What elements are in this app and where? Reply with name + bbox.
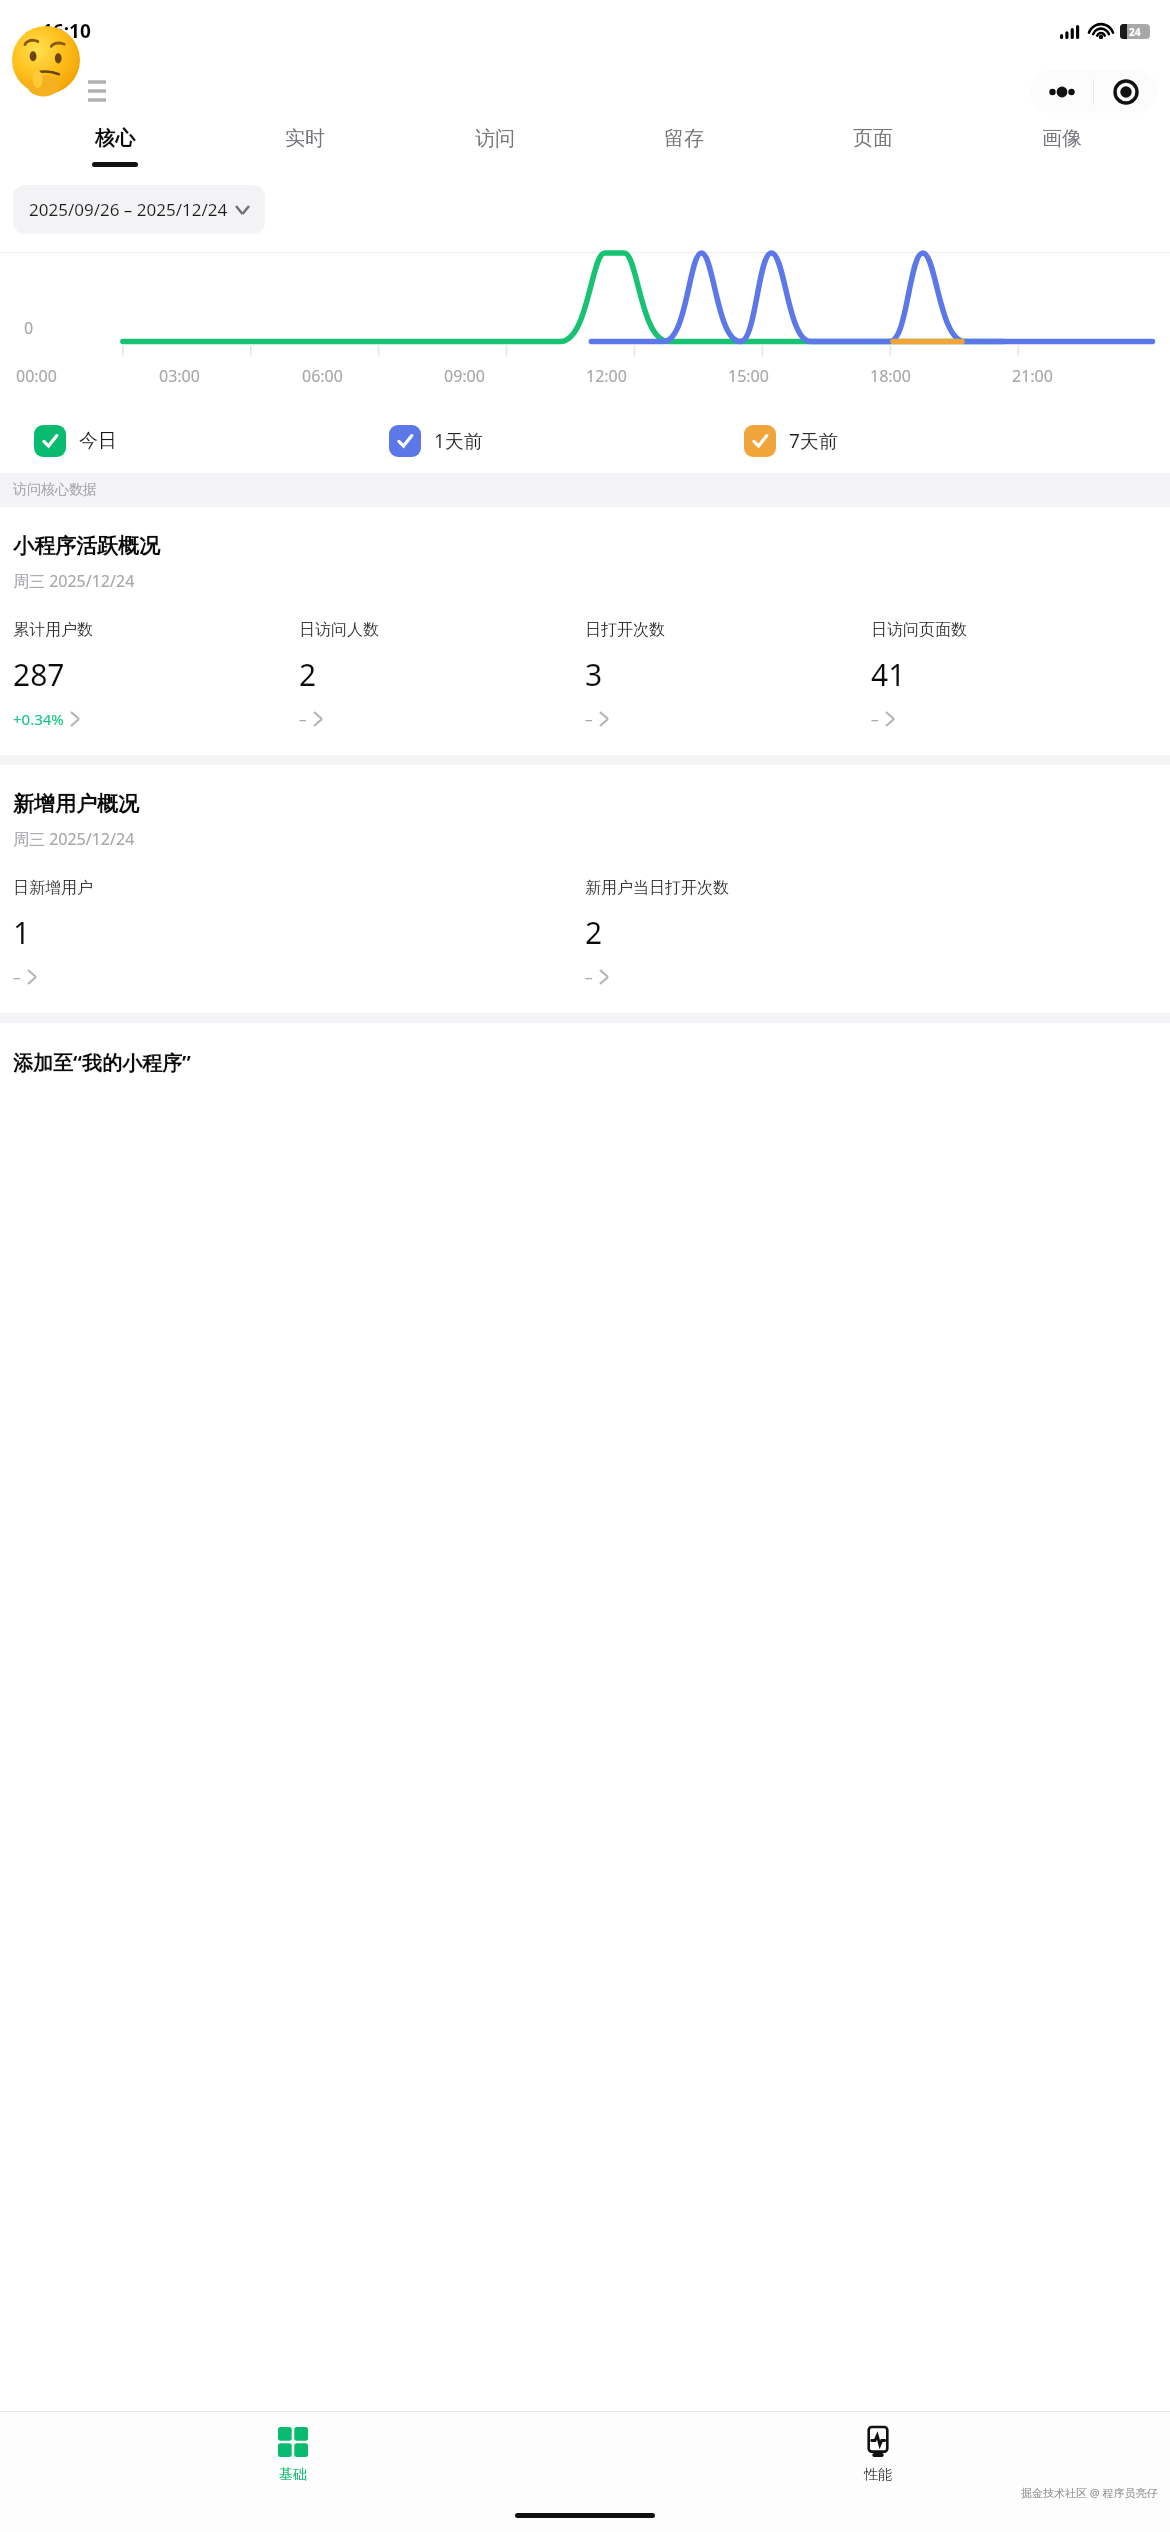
button[interactable]: 日访问页面数 bbox=[871, 620, 1157, 729]
button[interactable]: 访问 bbox=[400, 126, 589, 167]
staticText: 掘金技术社区 @ 程序员亮仔 bbox=[1021, 2485, 1158, 2500]
staticText: 访问 bbox=[475, 126, 515, 151]
button[interactable]: More bbox=[1030, 70, 1093, 113]
staticText: 基础 bbox=[279, 2466, 307, 2484]
staticText: 画像 bbox=[1042, 126, 1082, 151]
staticText: 小程序活跃概况 bbox=[13, 533, 160, 559]
button[interactable]: 核心 bbox=[20, 126, 210, 167]
button[interactable]: Menu bbox=[88, 82, 106, 100]
button[interactable]: 日打开次数 bbox=[585, 620, 871, 729]
staticText: – bbox=[585, 967, 593, 987]
staticText: 累计用户数 bbox=[13, 620, 93, 640]
staticText: 今日 bbox=[79, 429, 117, 453]
button[interactable]: 7天前 bbox=[744, 425, 1170, 457]
staticText: – bbox=[585, 709, 593, 729]
staticText: – bbox=[871, 709, 879, 729]
button[interactable]: 日新增用户 bbox=[13, 878, 585, 987]
staticText: 1 bbox=[13, 912, 31, 953]
button[interactable]: 日访问人数 bbox=[299, 620, 585, 729]
staticText: 访问核心数据 bbox=[13, 481, 97, 499]
button[interactable]: Close bbox=[1094, 70, 1158, 113]
staticText: 新用户当日打开次数 bbox=[585, 878, 729, 898]
button[interactable]: 留存 bbox=[589, 126, 778, 167]
staticText: 41 bbox=[871, 654, 906, 695]
staticText: 1天前 bbox=[434, 428, 483, 454]
staticText: 日访问页面数 bbox=[871, 620, 967, 640]
staticText: 周三 2025/12/24 bbox=[13, 828, 135, 850]
staticText: 日新增用户 bbox=[13, 878, 93, 898]
button[interactable]: 1天前 bbox=[389, 425, 744, 457]
staticText: 周三 2025/12/24 bbox=[13, 570, 135, 592]
staticText: 2 bbox=[585, 912, 603, 953]
staticText: 00:00 bbox=[16, 365, 159, 387]
staticText: 实时 bbox=[285, 126, 325, 151]
staticText: 03:00 bbox=[159, 365, 302, 387]
button[interactable]: 性能 bbox=[585, 2412, 1170, 2498]
staticText: 16:10 bbox=[42, 18, 91, 44]
staticText: 09:00 bbox=[444, 365, 586, 387]
staticText: 12:00 bbox=[586, 365, 728, 387]
staticText: 性能 bbox=[864, 2466, 892, 2484]
staticText: 15:00 bbox=[728, 365, 870, 387]
staticText: 18:00 bbox=[870, 365, 1012, 387]
staticText: 287 bbox=[13, 654, 65, 695]
staticText: 留存 bbox=[664, 126, 704, 151]
button[interactable]: 今日 bbox=[34, 425, 389, 457]
button[interactable]: 页面 bbox=[778, 126, 967, 167]
staticText: 2025/09/26 – 2025/12/24 bbox=[29, 198, 228, 221]
staticText: 0 bbox=[24, 317, 34, 339]
staticText: 新增用户概况 bbox=[13, 791, 139, 817]
staticText: – bbox=[13, 967, 21, 987]
staticText: 核心 bbox=[95, 126, 135, 151]
staticText: – bbox=[299, 709, 307, 729]
staticText: 日打开次数 bbox=[585, 620, 665, 640]
button[interactable]: 实时 bbox=[210, 126, 400, 167]
button[interactable]: 画像 bbox=[967, 126, 1156, 167]
button[interactable]: 新用户当日打开次数 bbox=[585, 878, 1157, 987]
staticText: 21:00 bbox=[1012, 365, 1154, 387]
staticText: +0.34% bbox=[13, 709, 64, 729]
staticText: 24 bbox=[1129, 25, 1141, 39]
staticText: 7天前 bbox=[789, 428, 838, 454]
staticText: 添加至“我的小程序” bbox=[13, 1049, 191, 1076]
staticText: 日访问人数 bbox=[299, 620, 379, 640]
button[interactable]: 2025/09/26 – 2025/12/24 bbox=[13, 185, 265, 234]
button[interactable]: 累计用户数 bbox=[13, 620, 299, 729]
staticText: 2 bbox=[299, 654, 317, 695]
button[interactable]: 基础 bbox=[0, 2412, 585, 2498]
staticText: 页面 bbox=[853, 126, 893, 151]
staticText: 3 bbox=[585, 654, 603, 695]
staticText: 06:00 bbox=[302, 365, 444, 387]
